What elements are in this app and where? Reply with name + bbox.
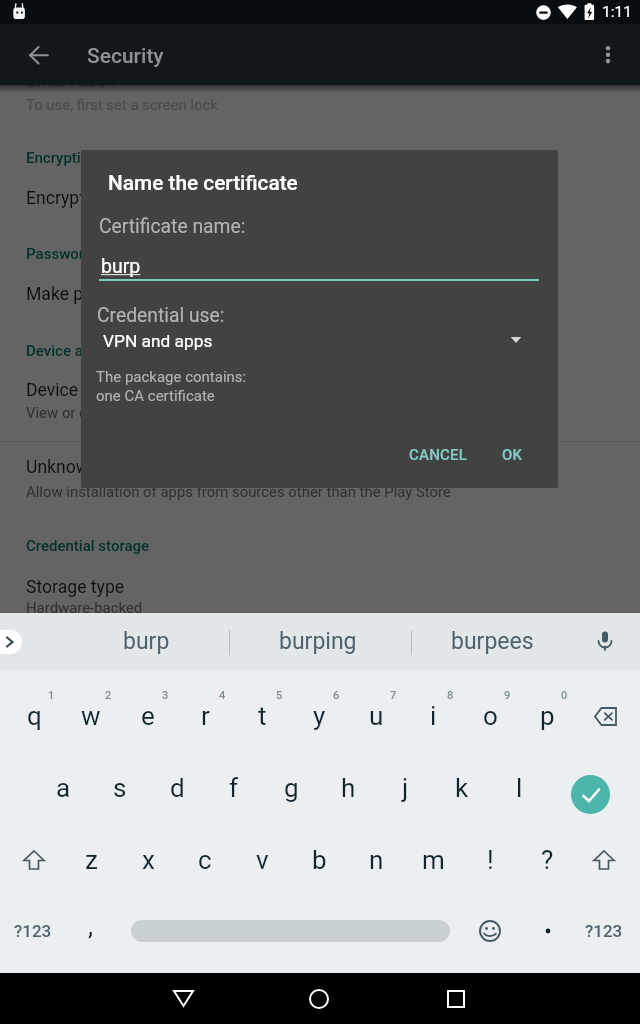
button[interactable]: Expand [0, 630, 22, 654]
button[interactable]: z [63, 834, 119, 886]
staticText: Credential storage [26, 537, 150, 555]
button[interactable]: , [63, 900, 119, 952]
staticText: l [516, 773, 523, 803]
staticText: OK [502, 446, 523, 464]
button[interactable]: ?123 [576, 905, 632, 957]
staticText: CANCEL [409, 446, 468, 464]
button[interactable]: Space [131, 920, 450, 942]
staticText: t [258, 701, 267, 731]
button[interactable]: burpees [412, 617, 572, 666]
button[interactable]: i [405, 690, 461, 742]
button[interactable]: k [434, 762, 490, 814]
button[interactable]: p [519, 690, 575, 742]
staticText: 1 [48, 689, 55, 702]
staticText: Password [26, 245, 93, 263]
button[interactable]: Enter [571, 775, 610, 814]
staticText: c [198, 845, 212, 875]
staticText: burp [101, 255, 141, 278]
staticText: g [284, 773, 299, 803]
staticText: p [540, 701, 555, 731]
staticText: o [483, 701, 498, 731]
button[interactable]: w [63, 690, 119, 742]
button[interactable]: a [35, 762, 91, 814]
button[interactable]: burp [66, 617, 226, 666]
button[interactable]: Voice input [583, 619, 627, 663]
staticText: x [142, 845, 155, 875]
staticText: VPN and apps [103, 331, 213, 351]
staticText: Credential use: [97, 304, 225, 327]
button[interactable]: c [177, 834, 233, 886]
button[interactable]: ?123 [5, 905, 61, 957]
button[interactable]: ? [519, 834, 575, 886]
button[interactable]: Emoji [462, 905, 518, 957]
button[interactable]: Backspace [577, 690, 633, 742]
staticText: Unknown sources [26, 457, 166, 478]
button[interactable]: q [6, 690, 62, 742]
button[interactable]: Recents [428, 973, 484, 1024]
button[interactable]: h [320, 762, 376, 814]
staticText: burp [123, 628, 170, 655]
staticText: Allow installation of apps from sources … [26, 483, 451, 500]
button[interactable]: More options [584, 31, 632, 79]
staticText: To use, first set a screen lock [26, 96, 218, 113]
button[interactable]: Period [520, 905, 576, 957]
button[interactable]: Back [15, 31, 63, 79]
staticText: 3 [162, 689, 169, 702]
staticText: Certificate name: [99, 215, 246, 238]
button[interactable]: burping [238, 617, 398, 666]
staticText: , [88, 911, 94, 941]
staticText: 7 [390, 689, 397, 702]
staticText: 4 [219, 689, 226, 702]
staticText: Make passwords visible [26, 284, 214, 305]
staticText: k [455, 773, 469, 803]
staticText: 5 [276, 689, 283, 702]
button[interactable]: u [348, 690, 404, 742]
staticText: j [402, 773, 409, 803]
staticText: Hardware-backed [26, 599, 143, 616]
button[interactable]: f [206, 762, 262, 814]
button[interactable]: b [291, 834, 347, 886]
button[interactable]: j [377, 762, 433, 814]
staticText: z [85, 845, 98, 875]
button[interactable]: m [405, 834, 461, 886]
button[interactable]: e [120, 690, 176, 742]
button[interactable]: Shift [6, 834, 62, 886]
button[interactable]: s [92, 762, 148, 814]
staticText: ! [487, 845, 494, 875]
button[interactable]: y [291, 690, 347, 742]
button[interactable]: Shift [576, 834, 632, 886]
button[interactable]: v [234, 834, 290, 886]
button[interactable]: OK [491, 437, 534, 473]
button[interactable]: o [462, 690, 518, 742]
staticText: b [312, 845, 327, 875]
button[interactable]: g [263, 762, 319, 814]
staticText: View or deactivate device administrators [26, 404, 295, 421]
button[interactable]: x [120, 834, 176, 886]
button[interactable]: ! [462, 834, 518, 886]
staticText: d [170, 773, 185, 803]
staticText: Device administration [26, 342, 172, 360]
staticText: 2 [105, 689, 112, 702]
button[interactable]: CANCEL [398, 437, 478, 473]
staticText: burpees [451, 628, 534, 655]
staticText: n [369, 845, 384, 875]
button[interactable]: l [491, 762, 547, 814]
button[interactable]: t [234, 690, 290, 742]
staticText: v [256, 845, 269, 875]
staticText: a [56, 773, 71, 803]
staticText: u [369, 701, 384, 731]
staticText: m [422, 845, 445, 875]
staticText: ?123 [585, 921, 623, 941]
staticText: i [430, 701, 437, 731]
staticText: 1:11 [602, 3, 632, 21]
staticText: 8 [447, 689, 454, 702]
staticText: one CA certificate [96, 387, 215, 405]
staticText: Encrypt phone [26, 188, 139, 209]
button[interactable]: Home [291, 973, 347, 1024]
button[interactable]: r [177, 690, 233, 742]
staticText: 6 [333, 689, 340, 702]
button[interactable]: d [149, 762, 205, 814]
button[interactable]: n [348, 834, 404, 886]
button[interactable]: Back [155, 973, 211, 1024]
staticText: e [141, 701, 155, 731]
